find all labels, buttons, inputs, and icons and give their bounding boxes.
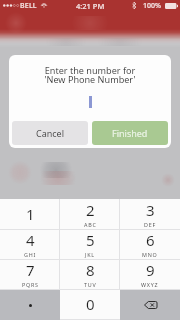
- staticText: 6: [146, 230, 155, 250]
- button[interactable]: 9: [120, 260, 180, 290]
- staticText: DEF: [144, 221, 156, 228]
- staticText: 8: [86, 260, 95, 280]
- staticText: WXYZ: [141, 281, 159, 288]
- staticText: 2: [86, 200, 95, 220]
- button[interactable]: 8: [60, 260, 120, 290]
- staticText: Enter the number for 'New Phone Number': [44, 64, 136, 86]
- button[interactable]: 5: [60, 230, 120, 260]
- staticText: Cancel: [36, 127, 65, 139]
- button[interactable]: 3: [120, 199, 180, 230]
- staticText: 4:21 PM: [76, 1, 105, 11]
- staticText: 9: [146, 260, 155, 280]
- staticText: 1: [26, 204, 35, 224]
- staticText: MNO: [142, 251, 158, 258]
- staticText: 100%: [143, 1, 161, 11]
- staticText: ABC: [84, 221, 97, 228]
- staticText: Finished: [112, 127, 148, 139]
- staticText: 7: [26, 260, 35, 280]
- staticText: GHI: [24, 251, 36, 258]
- button[interactable]: 1: [0, 199, 60, 230]
- button[interactable]: 2: [60, 199, 120, 230]
- button[interactable]: 4: [0, 230, 60, 260]
- staticText: 5: [86, 230, 95, 250]
- staticText: TUV: [84, 281, 97, 288]
- button[interactable]: 6: [120, 230, 180, 260]
- staticText: PQRS: [22, 281, 39, 288]
- button[interactable]: 0: [60, 290, 120, 320]
- button[interactable]: Backspace: [120, 290, 180, 320]
- button[interactable]: Period: [0, 290, 60, 320]
- button[interactable]: 7: [0, 260, 60, 290]
- staticText: BELL: [20, 1, 37, 11]
- staticText: 3: [146, 200, 155, 220]
- staticText: 4: [26, 230, 35, 250]
- staticText: 0: [86, 294, 95, 314]
- button[interactable]: Cancel: [12, 121, 88, 145]
- staticText: JKL: [85, 251, 95, 258]
- button[interactable]: Finished: [92, 121, 168, 145]
